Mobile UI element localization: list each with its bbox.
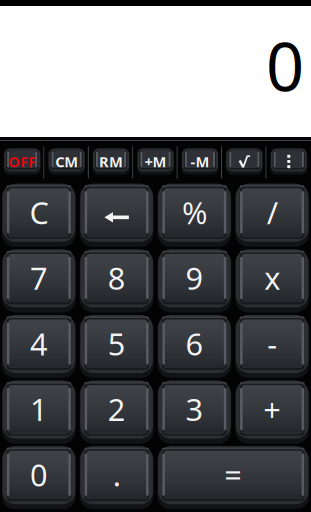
staticText: .: [113, 454, 121, 495]
button[interactable]: 8: [78, 248, 156, 314]
button[interactable]: +: [233, 379, 311, 445]
staticText: C: [29, 192, 48, 233]
staticText: RM: [99, 152, 123, 171]
staticText: +: [263, 389, 281, 429]
staticText: 5: [108, 323, 126, 364]
staticText: 8: [108, 257, 126, 298]
button[interactable]: -: [233, 314, 311, 379]
button[interactable]: Off: [0, 137, 44, 181]
button[interactable]: .: [78, 445, 156, 510]
button[interactable]: /: [233, 182, 311, 248]
staticText: 4: [30, 323, 48, 364]
staticText: +M: [144, 152, 166, 171]
button[interactable]: More options: [267, 137, 311, 181]
button[interactable]: =: [155, 445, 311, 510]
button[interactable]: 2: [78, 379, 156, 445]
staticText: /: [267, 192, 278, 233]
button[interactable]: 0: [0, 445, 78, 510]
button[interactable]: Add to memory: [133, 137, 178, 181]
staticText: 3: [185, 389, 203, 429]
button[interactable]: x: [233, 248, 311, 314]
staticText: CM: [55, 152, 78, 171]
button[interactable]: Clear memory: [44, 137, 89, 181]
staticText: =: [224, 454, 242, 495]
staticText: 7: [30, 257, 48, 298]
button[interactable]: 4: [0, 314, 78, 379]
staticText: 1: [30, 389, 48, 429]
button[interactable]: %: [155, 182, 233, 248]
staticText: -M: [190, 152, 209, 171]
button[interactable]: 1: [0, 379, 78, 445]
button[interactable]: Subtract from memory: [178, 137, 222, 181]
button[interactable]: 5: [78, 314, 156, 379]
button[interactable]: 6: [155, 314, 233, 379]
button[interactable]: Recall memory: [89, 137, 133, 181]
staticText: -: [267, 323, 277, 364]
staticText: 0: [266, 21, 304, 109]
staticText: x: [264, 257, 280, 298]
staticText: 6: [185, 323, 203, 364]
button[interactable]: 7: [0, 248, 78, 314]
staticText: 0: [30, 454, 48, 495]
button[interactable]: 9: [155, 248, 233, 314]
staticText: 2: [108, 389, 126, 429]
button[interactable]: C: [0, 182, 78, 248]
staticText: 9: [185, 257, 203, 298]
button[interactable]: Square root: [222, 137, 266, 181]
staticText: %: [182, 192, 207, 233]
button[interactable]: 3: [155, 379, 233, 445]
staticText: OFF: [8, 152, 36, 171]
button[interactable]: [78, 182, 156, 248]
